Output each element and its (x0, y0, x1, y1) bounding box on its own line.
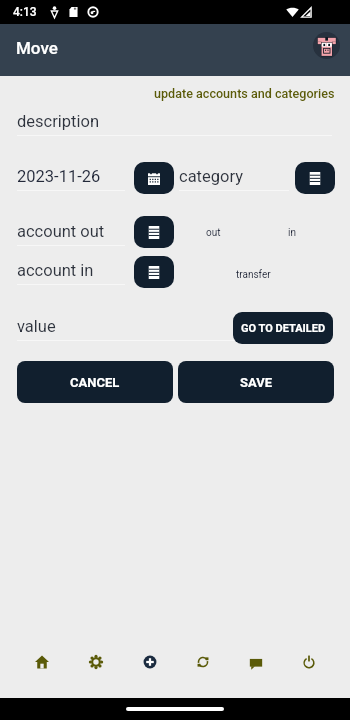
button[interactable]: CANCEL (17, 361, 173, 403)
button[interactable]: Profile (313, 32, 340, 59)
button[interactable]: GO TO DETAILED (233, 312, 333, 344)
staticText: update accounts and categories (154, 86, 335, 101)
button[interactable]: update accounts and categories (154, 86, 335, 101)
button[interactable]: Sync (176, 626, 229, 698)
staticText: account out (17, 222, 105, 241)
button[interactable]: Messages (229, 626, 282, 698)
button[interactable]: Choose account in (134, 256, 174, 288)
staticText: 4:13 (13, 5, 37, 19)
staticText: CANCEL (70, 375, 120, 390)
button[interactable]: Choose category (295, 162, 335, 194)
button[interactable]: Home (15, 626, 69, 698)
button[interactable]: Settings (69, 626, 123, 698)
button[interactable]: Choose account out (134, 216, 174, 248)
staticText: Move (16, 38, 58, 58)
staticText: value (17, 317, 56, 336)
staticText: 2023-11-26 (17, 167, 101, 186)
staticText: transfer (236, 269, 271, 281)
staticText: SAVE (240, 375, 273, 390)
staticText: out (206, 227, 221, 239)
button[interactable]: Pick date (134, 162, 174, 194)
button[interactable]: Add (123, 626, 176, 698)
staticText: account in (17, 261, 94, 280)
staticText: in (288, 227, 296, 239)
button[interactable]: SAVE (178, 361, 334, 403)
staticText: GO TO DETAILED (241, 322, 326, 335)
staticText: description (17, 112, 100, 131)
staticText: category (179, 167, 243, 186)
button[interactable]: Power (282, 626, 335, 698)
